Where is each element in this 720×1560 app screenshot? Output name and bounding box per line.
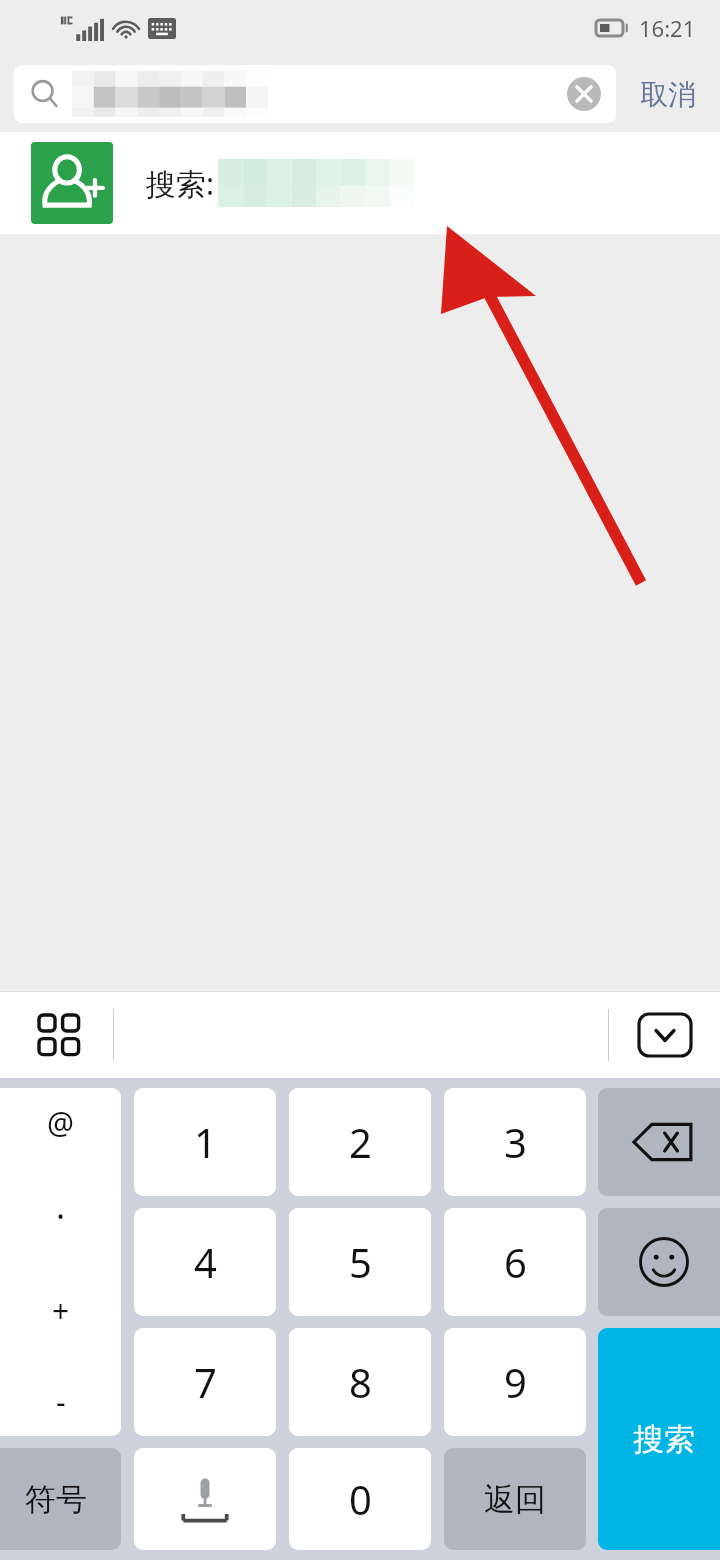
staticText: 5	[349, 1235, 372, 1289]
button[interactable]: Voice input	[134, 1448, 276, 1550]
button[interactable]: 1	[134, 1088, 276, 1196]
button[interactable]: 5	[289, 1208, 431, 1316]
button[interactable]: 0	[289, 1448, 431, 1550]
staticText: 2	[349, 1115, 372, 1169]
staticText: +	[52, 1290, 70, 1331]
staticText: 1	[194, 1115, 217, 1169]
button[interactable]: 7	[134, 1328, 276, 1436]
button[interactable]: 9	[444, 1328, 586, 1436]
staticText: 7	[194, 1355, 217, 1409]
button[interactable]: 4	[134, 1208, 276, 1316]
button[interactable]: Emoji	[598, 1208, 720, 1316]
button[interactable]: 符号	[0, 1448, 121, 1550]
staticText: 0	[349, 1472, 372, 1526]
button[interactable]: 搜索:	[0, 132, 720, 234]
button[interactable]: Backspace	[598, 1088, 720, 1196]
staticText: 取消	[640, 77, 696, 112]
button[interactable]: 8	[289, 1328, 431, 1436]
staticText: 9	[504, 1355, 527, 1409]
button[interactable]: 返回	[444, 1448, 586, 1550]
button[interactable]: 取消	[616, 56, 720, 132]
staticText: -	[56, 1381, 66, 1422]
button[interactable]: Clear text	[566, 76, 602, 112]
button[interactable]: 搜索	[598, 1328, 720, 1550]
staticText: 搜索	[633, 1420, 695, 1459]
staticText: 4	[194, 1235, 217, 1289]
staticText: ·	[56, 1193, 66, 1239]
staticText: @	[47, 1102, 74, 1143]
staticText: 16:21	[639, 13, 696, 43]
staticText: 搜索:	[146, 163, 215, 204]
button[interactable]: 3	[444, 1088, 586, 1196]
staticText: 8	[349, 1355, 372, 1409]
button[interactable]: Keyboard layouts	[30, 1006, 88, 1064]
button[interactable]: 6	[444, 1208, 586, 1316]
button[interactable]: Clear text	[14, 65, 616, 123]
staticText: 符号	[25, 1480, 87, 1519]
button[interactable]: 2	[289, 1088, 431, 1196]
staticText: 6	[504, 1235, 527, 1289]
button[interactable]: Hide keyboard	[636, 1010, 694, 1060]
button[interactable]: @	[0, 1088, 121, 1436]
staticText: 返回	[484, 1480, 546, 1519]
staticText: 3	[504, 1115, 527, 1169]
